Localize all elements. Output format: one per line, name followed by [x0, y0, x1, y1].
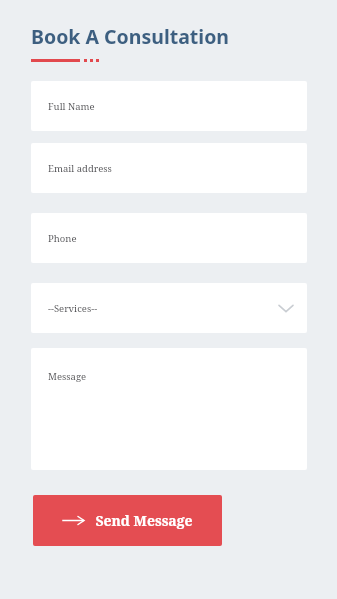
- button[interactable]: Full Name: [31, 81, 307, 131]
- button[interactable]: Email address: [31, 143, 307, 193]
- staticText: Send Message: [95, 511, 193, 530]
- staticText: Email address: [48, 162, 112, 175]
- staticText: Full Name: [48, 100, 95, 113]
- staticText: Message: [48, 370, 87, 383]
- staticText: --Services--: [48, 302, 98, 315]
- button[interactable]: Message: [31, 348, 307, 470]
- staticText: Book A Consultation: [31, 23, 230, 50]
- button[interactable]: Phone: [31, 213, 307, 263]
- button[interactable]: Send Message: [33, 495, 222, 546]
- button[interactable]: --Services--: [31, 283, 307, 333]
- staticText: Phone: [48, 232, 77, 245]
